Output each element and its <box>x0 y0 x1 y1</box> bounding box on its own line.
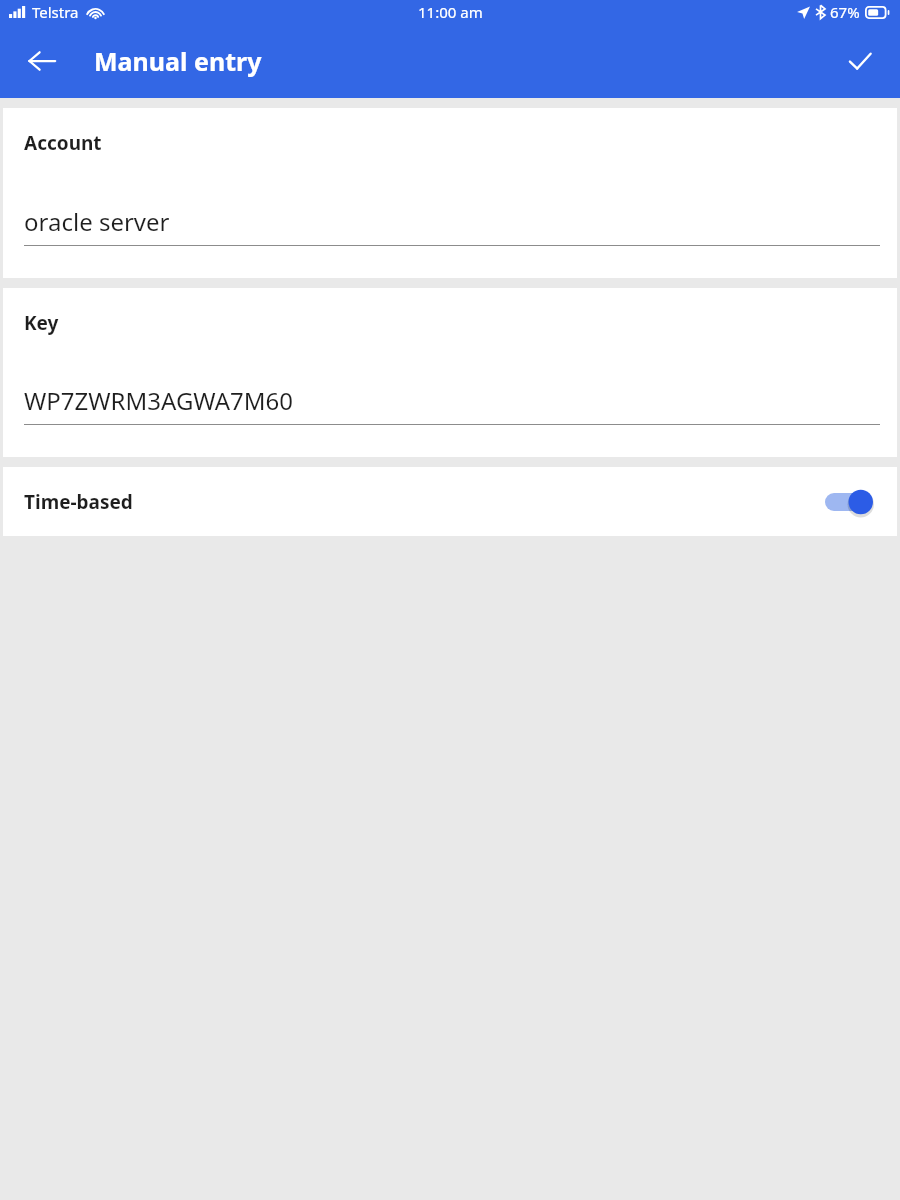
staticText: Account <box>24 130 102 156</box>
staticText: WP7ZWRM3AGWA7M60 <box>24 384 294 417</box>
staticText: Telstra <box>32 2 79 22</box>
staticText: Time-based <box>24 489 133 515</box>
button[interactable]: Account <box>3 108 897 278</box>
button[interactable]: Back <box>14 33 70 89</box>
button[interactable]: Key <box>3 288 897 457</box>
staticText: Key <box>24 310 59 336</box>
staticText: 11:00 am <box>418 2 483 22</box>
staticText: oracle server <box>24 205 170 238</box>
staticText: 67% <box>830 2 860 22</box>
staticText: Manual entry <box>94 44 262 78</box>
button[interactable]: Time-based <box>3 467 897 536</box>
button[interactable]: Save <box>834 35 886 87</box>
